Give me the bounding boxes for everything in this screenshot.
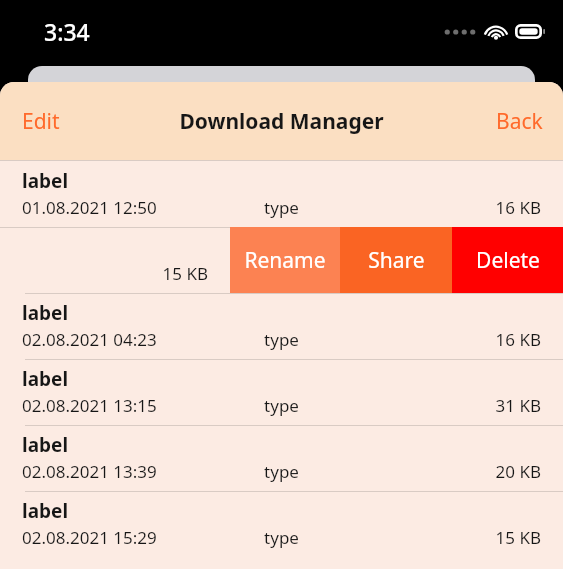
staticText: label	[22, 300, 69, 326]
staticText: 02.08.2021 13:15	[22, 394, 195, 417]
staticText: type	[195, 394, 368, 417]
staticText: label	[22, 432, 69, 458]
staticText: 16 KB	[368, 196, 541, 219]
staticText: Rename	[244, 246, 326, 275]
button[interactable]: Delete	[452, 227, 563, 293]
staticText: Edit	[22, 107, 60, 136]
button[interactable]: label	[0, 359, 563, 425]
staticText: type	[195, 328, 368, 351]
staticText: 01.08.2021 12:50	[22, 196, 195, 219]
button[interactable]: Edit	[0, 97, 82, 146]
button[interactable]: label	[0, 293, 563, 359]
staticText: label	[22, 366, 69, 392]
staticText: type	[195, 526, 368, 549]
staticText: Delete	[476, 246, 540, 275]
staticText: 3:34	[44, 16, 90, 47]
staticText: Download Manager	[179, 107, 384, 136]
staticText: type	[195, 460, 368, 483]
staticText: 02.08.2021 04:23	[22, 328, 195, 351]
staticText: 15 KB	[35, 262, 208, 285]
staticText: 15 KB	[368, 526, 541, 549]
staticText: type	[195, 196, 368, 219]
button[interactable]: label	[0, 425, 563, 491]
button[interactable]: Back	[476, 97, 563, 146]
staticText: label	[22, 168, 69, 194]
staticText: 20 KB	[368, 460, 541, 483]
staticText: 02.08.2021 13:39	[22, 460, 195, 483]
staticText: 16 KB	[368, 328, 541, 351]
staticText: Share	[368, 246, 425, 275]
button[interactable]: label	[0, 161, 563, 227]
button[interactable]: label	[0, 227, 230, 293]
button[interactable]: Share	[340, 227, 452, 293]
staticText: 31 KB	[368, 394, 541, 417]
button[interactable]: Rename	[230, 227, 340, 293]
button[interactable]: label	[0, 491, 563, 557]
staticText: label	[22, 498, 69, 524]
staticText: Back	[496, 107, 543, 136]
staticText: 02.08.2021 15:29	[22, 526, 195, 549]
